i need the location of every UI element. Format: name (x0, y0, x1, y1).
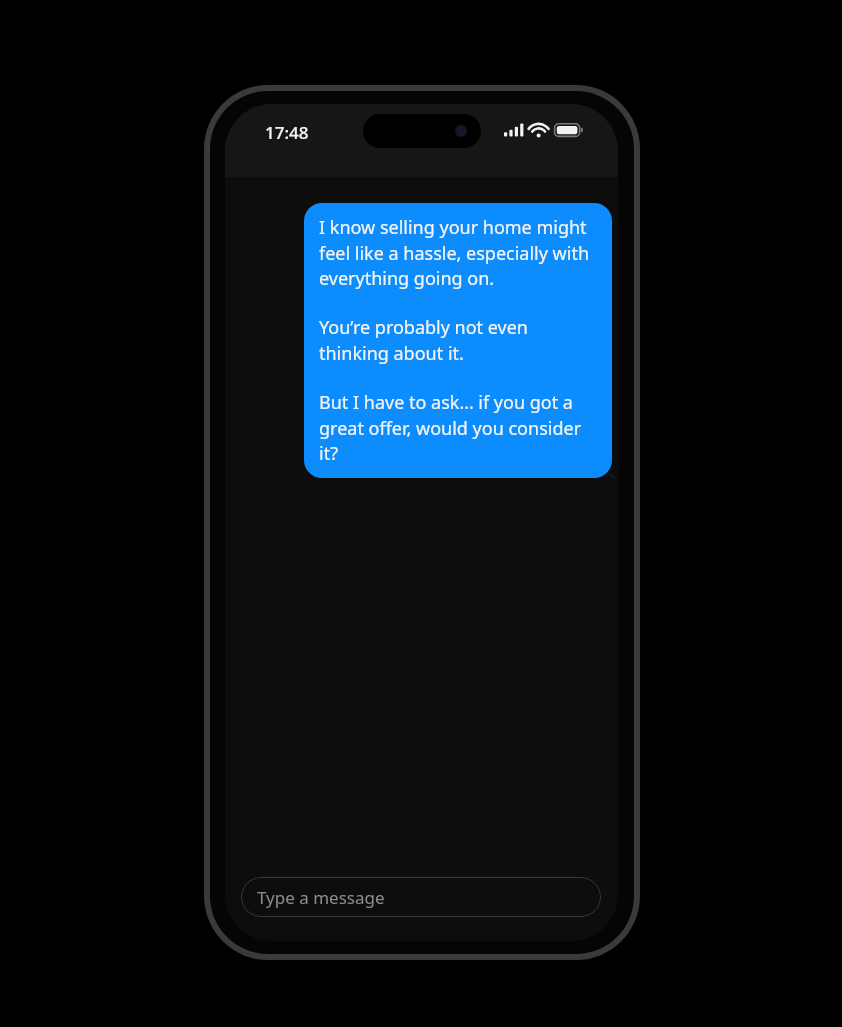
staticText: You’re probably not even thinking about … (319, 315, 597, 365)
staticText: I know selling your home might feel like… (319, 215, 597, 290)
button[interactable]: Type a message (241, 877, 601, 917)
button[interactable]: I know selling your home might feel like… (304, 203, 612, 478)
staticText: Type a message (257, 886, 385, 909)
staticText: 17:48 (265, 121, 309, 144)
staticText: But I have to ask… if you got a great of… (319, 390, 597, 465)
